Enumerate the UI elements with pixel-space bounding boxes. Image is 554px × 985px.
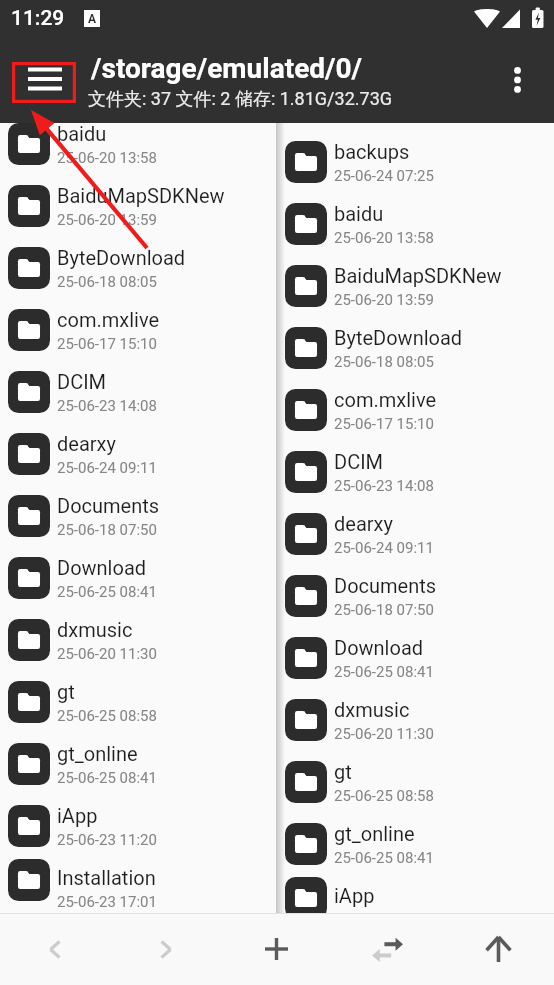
- button[interactable]: BaiduMapSDKNew: [285, 255, 554, 317]
- staticText: 25-06-18 08:05: [57, 273, 157, 291]
- staticText: 25-06-23 17:01: [57, 893, 157, 911]
- staticText: DCIM: [334, 450, 384, 473]
- button[interactable]: Documents: [0, 485, 276, 547]
- button[interactable]: More options: [493, 55, 541, 101]
- staticText: 25-06-20 11:30: [334, 725, 434, 743]
- staticText: dearxy: [57, 432, 116, 455]
- staticText: 25-06-25 08:41: [334, 849, 434, 867]
- button[interactable]: ByteDownload: [285, 317, 554, 379]
- button[interactable]: backups: [285, 131, 554, 193]
- staticText: 25-06-20 13:58: [57, 149, 157, 167]
- staticText: gt: [334, 760, 352, 783]
- staticText: 25-06-23 14:08: [57, 397, 157, 415]
- staticText: 25-06-25 08:41: [57, 769, 157, 787]
- staticText: iApp: [57, 804, 98, 827]
- staticText: gt_online: [57, 742, 138, 765]
- button[interactable]: Download: [285, 627, 554, 689]
- staticText: gt: [57, 680, 75, 703]
- button[interactable]: com.mxlive: [0, 299, 276, 361]
- button[interactable]: Forward: [110, 913, 221, 985]
- staticText: 25-06-24 09:11: [57, 459, 157, 477]
- staticText: 25-06-18 08:05: [334, 353, 434, 371]
- staticText: baidu: [57, 122, 107, 145]
- staticText: 25-06-24 07:25: [334, 167, 434, 185]
- staticText: gt_online: [334, 822, 415, 845]
- staticText: 25-06-20 11:30: [57, 645, 157, 663]
- button[interactable]: Menu: [10, 54, 80, 104]
- staticText: 25-06-23 11:20: [57, 831, 157, 849]
- button[interactable]: dxmusic: [285, 689, 554, 751]
- staticText: ByteDownload: [334, 326, 463, 349]
- button[interactable]: Documents: [285, 565, 554, 627]
- button[interactable]: Download: [0, 547, 276, 609]
- staticText: 25-06-25 08:41: [334, 663, 434, 681]
- button[interactable]: Back: [0, 913, 110, 985]
- staticText: /storage/emulated/0/: [91, 52, 363, 85]
- button[interactable]: iApp: [285, 875, 554, 921]
- staticText: com.mxlive: [334, 388, 437, 411]
- staticText: baidu: [334, 202, 384, 225]
- staticText: 25-06-18 07:50: [334, 601, 434, 619]
- staticText: 25-06-24 09:11: [334, 539, 434, 557]
- staticText: DCIM: [57, 370, 107, 393]
- staticText: BaiduMapSDKNew: [334, 264, 502, 287]
- button[interactable]: gt: [285, 751, 554, 813]
- button[interactable]: Installation: [0, 857, 276, 903]
- staticText: 25-06-25 08:58: [334, 787, 434, 805]
- staticText: 文件夹: 37 文件: 2 储存: 1.81G/32.73G: [88, 88, 393, 111]
- button[interactable]: DCIM: [0, 361, 276, 423]
- button[interactable]: dxmusic: [0, 609, 276, 671]
- button[interactable]: iApp: [0, 795, 276, 857]
- button[interactable]: gt_online: [0, 733, 276, 795]
- button[interactable]: baidu: [0, 113, 276, 175]
- staticText: Download: [57, 556, 147, 579]
- staticText: 25-06-17 15:10: [57, 335, 157, 353]
- staticText: 25-06-25 08:41: [57, 583, 157, 601]
- button[interactable]: ByteDownload: [0, 237, 276, 299]
- staticText: com.mxlive: [57, 308, 160, 331]
- staticText: BaiduMapSDKNew: [57, 184, 225, 207]
- button[interactable]: com.mxlive: [285, 379, 554, 441]
- button[interactable]: New: [221, 913, 332, 985]
- button[interactable]: DCIM: [285, 441, 554, 503]
- staticText: A: [88, 12, 97, 26]
- staticText: ByteDownload: [57, 246, 186, 269]
- staticText: 25-06-20 13:58: [334, 229, 434, 247]
- staticText: 25-06-17 15:10: [334, 415, 434, 433]
- staticText: 25-06-25 08:58: [57, 707, 157, 725]
- button[interactable]: dearxy: [285, 503, 554, 565]
- staticText: 25-06-18 07:50: [57, 521, 157, 539]
- button[interactable]: gt_online: [285, 813, 554, 875]
- button[interactable]: gt: [0, 671, 276, 733]
- staticText: 25-06-23 11:20: [334, 911, 434, 929]
- button[interactable]: Swap panes: [332, 913, 443, 985]
- staticText: Documents: [57, 494, 160, 517]
- button[interactable]: BaiduMapSDKNew: [0, 175, 276, 237]
- staticText: 25-06-23 14:08: [334, 477, 434, 495]
- staticText: iApp: [334, 884, 375, 907]
- staticText: dearxy: [334, 512, 393, 535]
- staticText: 25-06-20 13:59: [57, 211, 157, 229]
- staticText: dxmusic: [334, 698, 410, 721]
- staticText: Download: [334, 636, 424, 659]
- staticText: 25-06-20 13:59: [334, 291, 434, 309]
- staticText: Documents: [334, 574, 437, 597]
- staticText: dxmusic: [57, 618, 133, 641]
- staticText: backups: [334, 140, 410, 163]
- button[interactable]: Up: [443, 913, 554, 985]
- staticText: Installation: [57, 866, 156, 889]
- button[interactable]: dearxy: [0, 423, 276, 485]
- button[interactable]: baidu: [285, 193, 554, 255]
- staticText: 11:29: [11, 6, 65, 31]
